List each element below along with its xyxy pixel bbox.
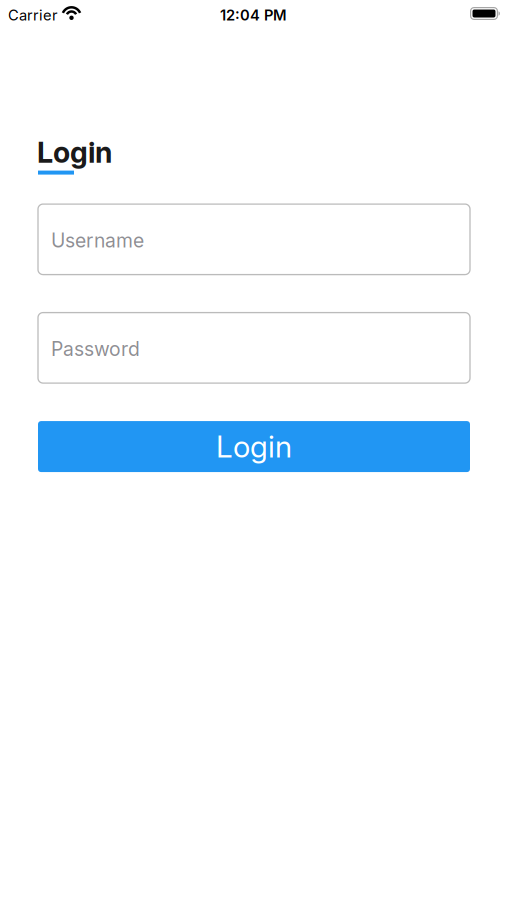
button[interactable]: Username: [38, 204, 470, 275]
staticText: Password: [51, 337, 140, 361]
staticText: Login: [37, 135, 112, 170]
staticText: Username: [51, 229, 144, 252]
button[interactable]: Password: [38, 313, 470, 383]
staticText: 12:04 PM: [220, 6, 287, 24]
staticText: Carrier: [8, 6, 58, 24]
staticText: Login: [216, 428, 292, 465]
button[interactable]: Login: [38, 421, 470, 472]
